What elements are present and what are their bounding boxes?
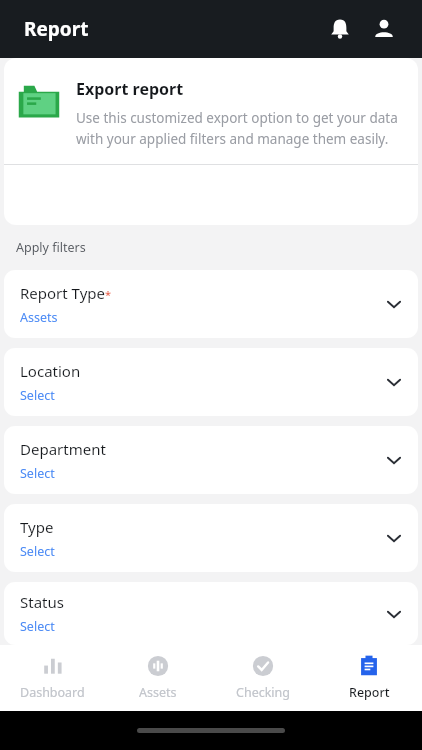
staticText: Select [20,465,55,482]
staticText: Report [349,684,390,701]
button[interactable]: Status [4,582,418,645]
staticText: Checking [236,684,290,701]
button[interactable]: Dashboard [0,645,105,711]
button[interactable]: Report [316,645,422,711]
button[interactable]: Type [4,504,418,572]
staticText: Dashboard [20,684,85,701]
staticText: Status [20,592,64,612]
staticText: Export report [76,78,184,100]
staticText: Select [20,543,55,560]
staticText: Type [20,517,54,537]
staticText: Select [20,618,55,635]
staticText: Use this customized export option to get… [76,109,404,148]
button[interactable]: Export report [4,58,418,225]
staticText: Assets [20,309,58,326]
button[interactable]: Checking [210,645,316,711]
staticText: Report [24,16,89,42]
staticText: Apply filters [16,239,86,256]
staticText: Select [20,387,55,404]
staticText: Assets [139,684,177,701]
staticText: Report Type* [20,283,112,303]
staticText: Location [20,361,81,381]
button[interactable]: Department [4,426,418,494]
button[interactable]: Profile [362,7,406,51]
button[interactable]: Assets [105,645,210,711]
staticText: Department [20,439,106,459]
button[interactable]: Report Type* [4,270,418,338]
button[interactable]: Notifications [318,7,362,51]
button[interactable]: Location [4,348,418,416]
